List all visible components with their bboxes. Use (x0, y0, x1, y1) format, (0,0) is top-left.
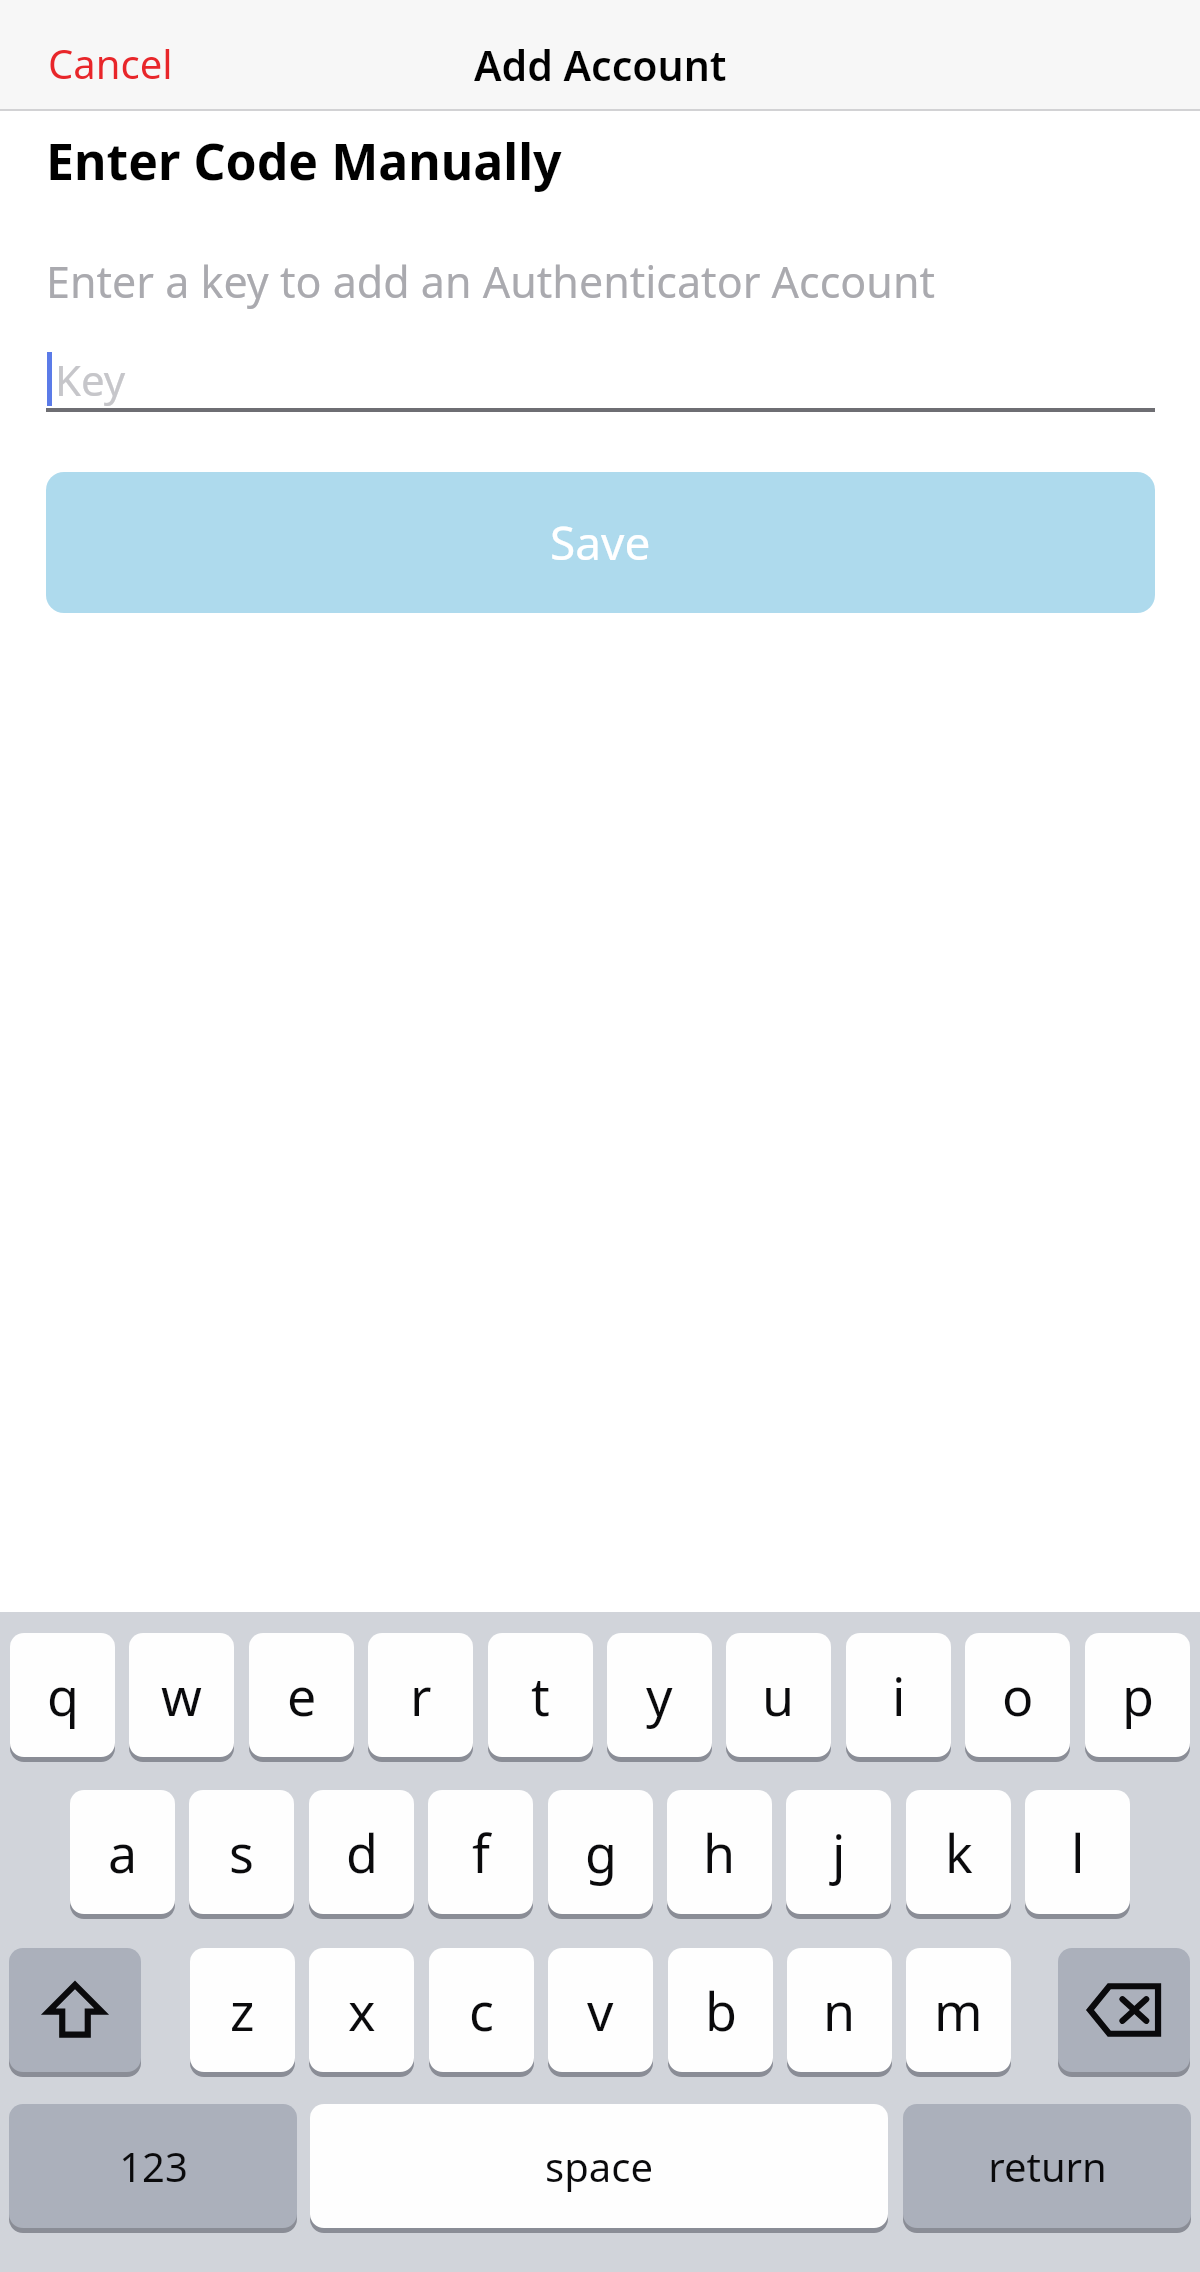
button[interactable]: q (10, 1633, 115, 1757)
button[interactable]: h (667, 1790, 772, 1914)
staticText: k (945, 1817, 973, 1888)
staticText: t (531, 1660, 550, 1731)
button[interactable]: y (607, 1633, 712, 1757)
staticText: x (348, 1975, 376, 2046)
button[interactable]: b (668, 1948, 773, 2072)
staticText: w (161, 1660, 202, 1731)
button[interactable]: Key (46, 346, 1155, 412)
button[interactable]: return (903, 2104, 1191, 2228)
staticText: 123 (119, 2139, 188, 2193)
button[interactable]: e (249, 1633, 354, 1757)
button[interactable]: w (129, 1633, 234, 1757)
staticText: o (1002, 1660, 1034, 1731)
button[interactable]: z (190, 1948, 295, 2072)
staticText: y (646, 1660, 673, 1731)
button[interactable]: d (309, 1790, 414, 1914)
staticText: n (823, 1975, 856, 2046)
staticText: b (705, 1975, 737, 2046)
staticText: d (346, 1817, 378, 1888)
staticText: Cancel (48, 36, 173, 90)
button[interactable]: p (1085, 1633, 1190, 1757)
staticText: s (229, 1817, 254, 1888)
staticText: Add Account (474, 37, 727, 93)
button[interactable]: u (726, 1633, 831, 1757)
button[interactable]: o (965, 1633, 1070, 1757)
staticText: i (892, 1660, 906, 1731)
staticText: h (703, 1817, 736, 1888)
button[interactable]: k (906, 1790, 1011, 1914)
staticText: a (108, 1817, 138, 1888)
staticText: l (1071, 1817, 1085, 1888)
staticText: Enter a key to add an Authenticator Acco… (46, 252, 936, 311)
button[interactable]: c (429, 1948, 534, 2072)
button[interactable]: n (787, 1948, 892, 2072)
button[interactable]: Backspace (1058, 1948, 1190, 2072)
button[interactable]: l (1025, 1790, 1130, 1914)
button[interactable]: a (70, 1790, 175, 1914)
staticText: c (469, 1975, 494, 2046)
staticText: Key (55, 351, 126, 408)
staticText: Save (550, 511, 651, 574)
button[interactable]: j (786, 1790, 891, 1914)
button[interactable]: Cancel (40, 26, 181, 100)
staticText: z (230, 1975, 255, 2046)
staticText: m (934, 1975, 983, 2046)
staticText: e (287, 1660, 317, 1731)
staticText: j (832, 1817, 846, 1888)
staticText: g (585, 1817, 617, 1888)
staticText: space (545, 2139, 653, 2193)
staticText: Enter Code Manually (46, 127, 562, 195)
button[interactable]: g (548, 1790, 653, 1914)
button[interactable]: Save (46, 472, 1155, 613)
staticText: u (762, 1660, 795, 1731)
button[interactable]: v (548, 1948, 653, 2072)
button[interactable]: i (846, 1633, 951, 1757)
staticText: v (587, 1975, 614, 2046)
button[interactable]: m (906, 1948, 1011, 2072)
staticText: p (1122, 1660, 1154, 1731)
button[interactable]: t (488, 1633, 593, 1757)
button[interactable]: 123 (9, 2104, 297, 2228)
staticText: r (410, 1660, 432, 1731)
staticText: q (47, 1660, 79, 1731)
button[interactable]: space (310, 2104, 888, 2228)
button[interactable]: s (189, 1790, 294, 1914)
button[interactable]: f (428, 1790, 533, 1914)
button[interactable]: r (368, 1633, 473, 1757)
staticText: return (988, 2139, 1107, 2193)
button[interactable]: Shift (9, 1948, 141, 2072)
button[interactable]: x (309, 1948, 414, 2072)
staticText: f (472, 1817, 490, 1888)
